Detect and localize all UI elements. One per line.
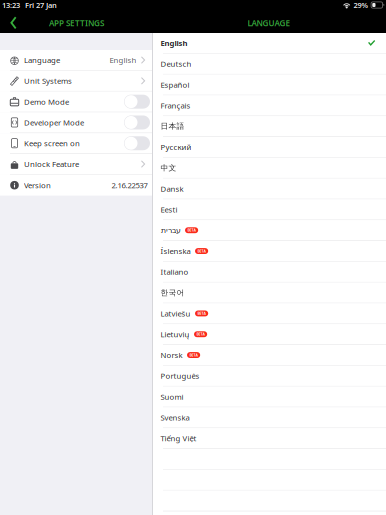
staticText: Latviešu (160, 308, 190, 319)
staticText: Deutsch (160, 59, 191, 69)
staticText: 日本語 (160, 121, 184, 131)
button[interactable]: Unlock Feature (0, 154, 152, 175)
button[interactable]: Keep screen on (0, 133, 152, 154)
staticText: Tiếng Việt (160, 433, 196, 443)
staticText: BETA (198, 249, 206, 253)
staticText: עברית (160, 226, 180, 235)
staticText: 13:23 (2, 0, 20, 10)
button[interactable]: 中文 (153, 158, 386, 179)
staticText: Keep screen on (24, 138, 80, 148)
staticText: Fri 27 Jan (25, 0, 57, 10)
staticText: Developer Mode (24, 117, 84, 128)
staticText: Unlock Feature (24, 159, 79, 169)
staticText: 한국어 (160, 288, 184, 297)
button[interactable]: Unit Systems (0, 71, 152, 92)
button[interactable]: Русский (153, 137, 386, 158)
staticText: Demo Mode (24, 96, 69, 107)
staticText: 2.16.22537 (111, 180, 147, 190)
staticText: APP SETTINGS (49, 17, 104, 29)
staticText: BETA (198, 311, 206, 316)
staticText: BETA (190, 353, 198, 357)
staticText: Svenska (160, 412, 189, 423)
button[interactable]: Dansk (153, 179, 386, 199)
staticText: Русский (160, 142, 191, 152)
staticText: Suomi (160, 391, 183, 402)
button[interactable]: עברית (153, 220, 386, 241)
button[interactable]: 한국어 (153, 283, 386, 303)
staticText: 中文 (160, 163, 176, 173)
staticText: English (160, 38, 187, 48)
button[interactable]: Íslenska (153, 241, 386, 262)
staticText: Italiano (160, 267, 188, 277)
staticText: LANGUAGE (247, 17, 290, 29)
button[interactable]: Tiếng Việt (153, 428, 386, 449)
staticText: Lietuvių (160, 329, 189, 339)
button[interactable]: Language (0, 50, 152, 71)
staticText: BETA (188, 228, 196, 233)
staticText: Français (160, 100, 190, 111)
button[interactable]: English (153, 33, 386, 54)
button[interactable]: Norsk (153, 345, 386, 366)
button[interactable]: Français (153, 95, 386, 116)
button[interactable]: Español (153, 75, 386, 95)
button[interactable]: Demo Mode (0, 92, 152, 112)
staticText: Eesti (160, 204, 177, 215)
button[interactable]: Developer Mode (0, 112, 152, 133)
staticText: Español (160, 79, 189, 90)
staticText: Unit Systems (24, 76, 72, 86)
button[interactable]: Svenska (153, 407, 386, 428)
staticText: 29% (354, 0, 369, 10)
staticText: Version (24, 180, 51, 190)
button[interactable]: Suomi (153, 387, 386, 407)
staticText: Dansk (160, 183, 183, 194)
button[interactable]: Português (153, 366, 386, 387)
button[interactable]: 日本語 (153, 116, 386, 137)
staticText: Norsk (160, 350, 182, 360)
button[interactable]: Deutsch (153, 54, 386, 75)
button[interactable]: Lietuvių (153, 324, 386, 345)
button[interactable]: Version (0, 175, 152, 196)
staticText: BETA (197, 332, 205, 337)
staticText: Language (24, 55, 60, 65)
button[interactable]: Latviešu (153, 303, 386, 324)
button[interactable]: Italiano (153, 262, 386, 283)
staticText: English (109, 55, 136, 65)
button[interactable]: Back (3, 13, 25, 33)
staticText: Português (160, 371, 199, 381)
button[interactable]: Eesti (153, 199, 386, 220)
staticText: Íslenska (160, 246, 190, 256)
